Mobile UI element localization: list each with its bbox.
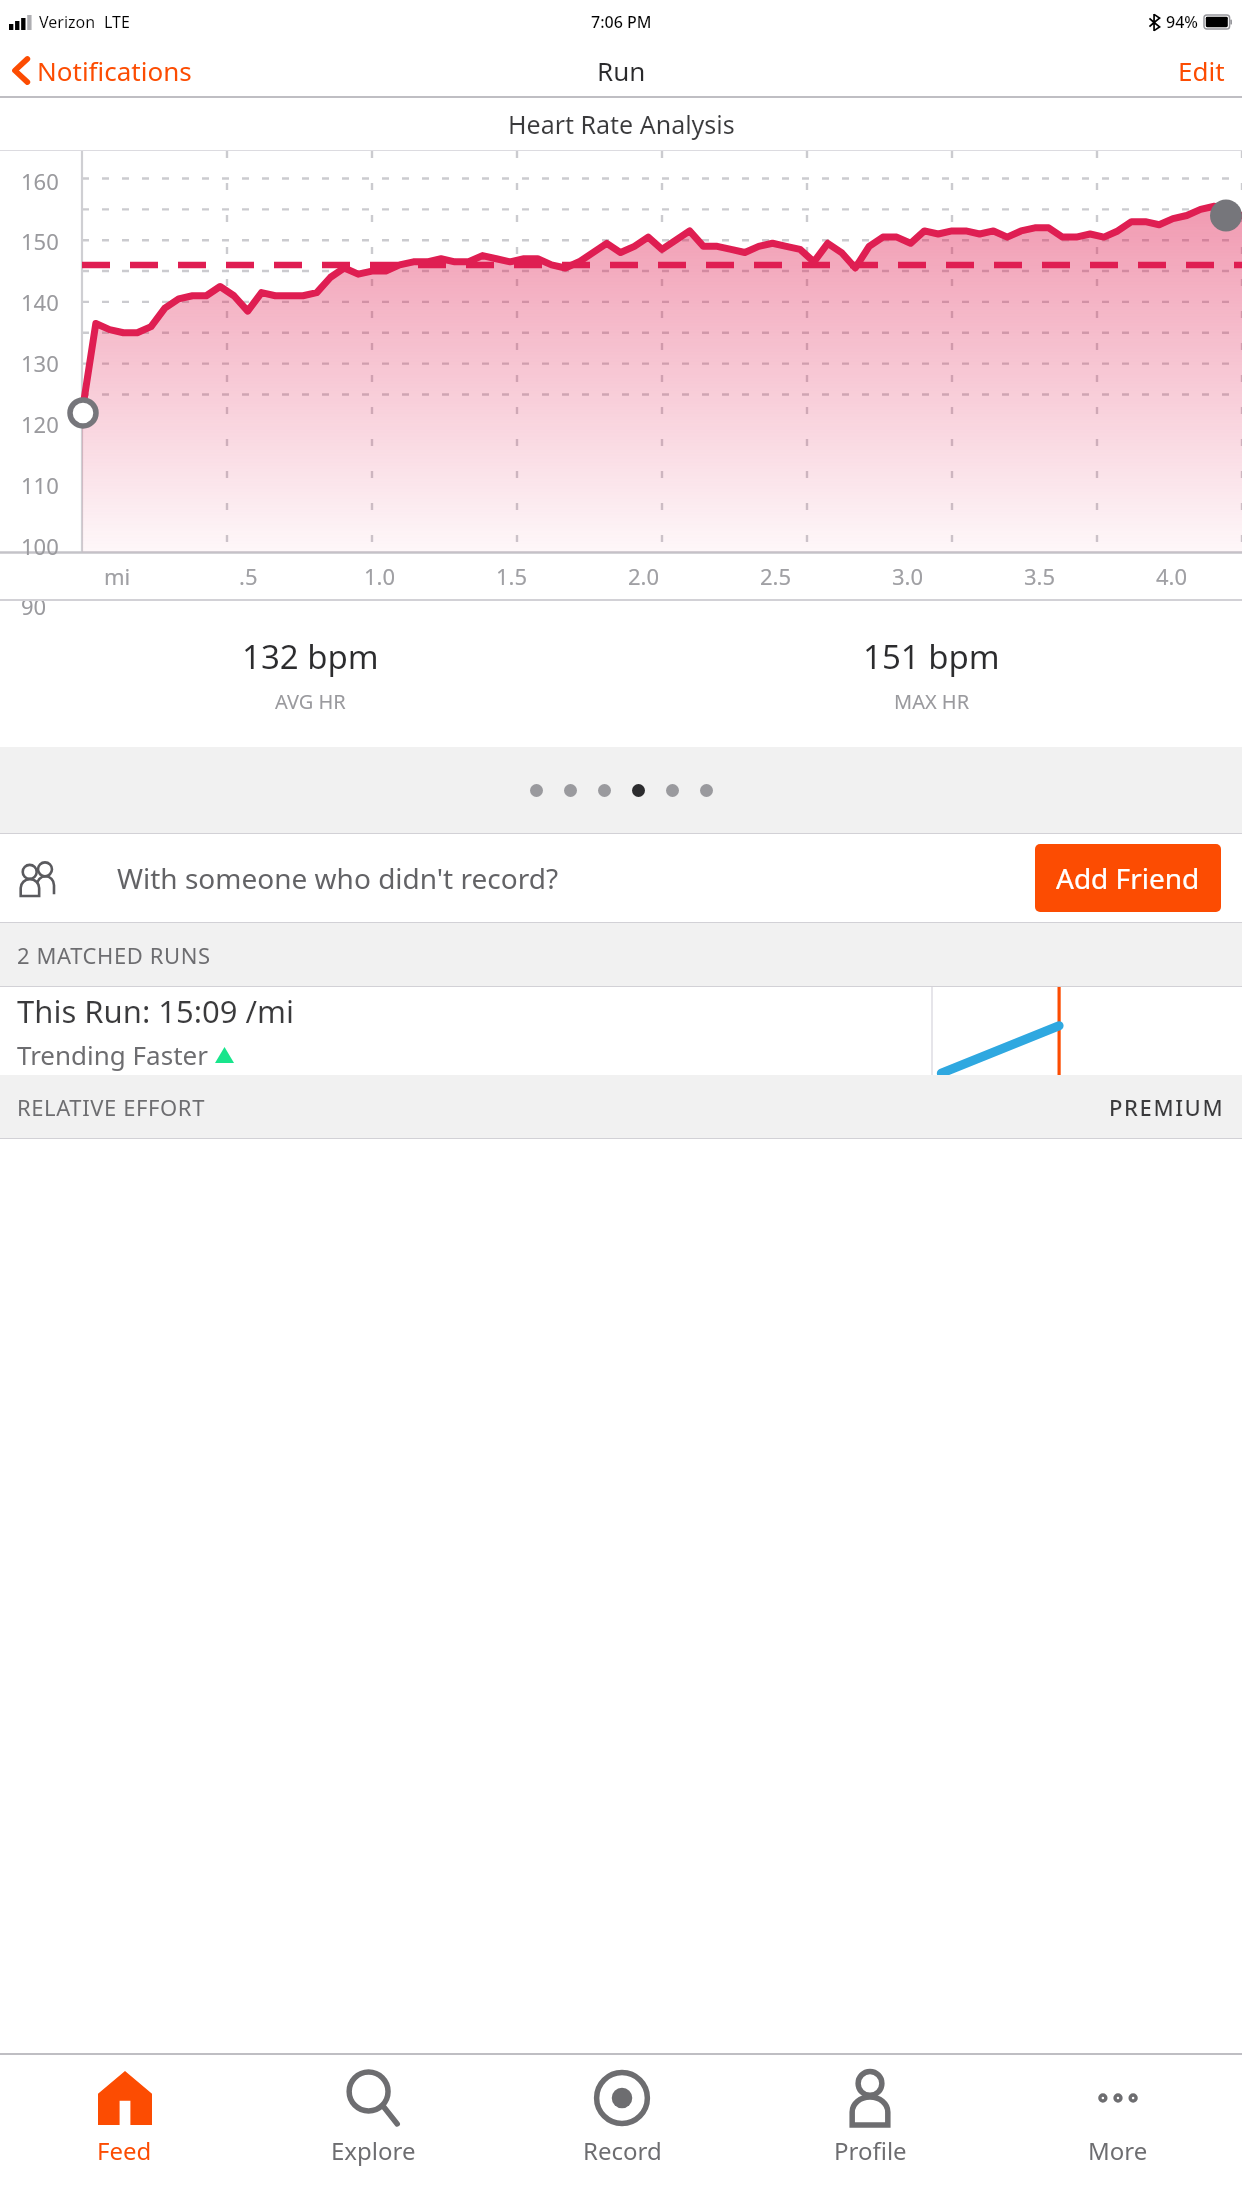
button[interactable]: This Run: 15:09 /mi (0, 987, 1242, 1075)
button[interactable]: More (994, 2055, 1242, 2208)
staticText: Heart Rate Analysis (508, 107, 735, 141)
staticText: 1.5 (496, 561, 528, 591)
staticText: mi (104, 561, 131, 591)
button[interactable]: Notifications (0, 47, 206, 94)
staticText: PREMIUM (1109, 1092, 1225, 1122)
staticText: 120 (21, 409, 59, 439)
staticText: 100 (21, 531, 59, 561)
staticText: 132 bpm (242, 634, 379, 679)
staticText: More (1088, 2134, 1148, 2167)
staticText: 7:06 PM (591, 11, 652, 33)
button[interactable]: Add Friend (1035, 844, 1221, 912)
staticText: 151 bpm (863, 634, 1000, 679)
staticText: 2.5 (760, 561, 792, 591)
staticText: Notifications (37, 53, 192, 88)
staticText: This Run: 15:09 /mi (17, 990, 295, 1032)
staticText: 130 (21, 348, 59, 378)
button[interactable]: Edit (1161, 44, 1242, 96)
button[interactable]: Explore (249, 2055, 498, 2208)
staticText: Edit (1178, 53, 1225, 87)
staticText: Profile (834, 2134, 907, 2167)
staticText: 3.0 (892, 561, 924, 591)
staticText: LTE (104, 11, 130, 33)
staticText: 150 (21, 226, 59, 256)
staticText: Feed (97, 2134, 152, 2167)
staticText: AVG HR (275, 688, 346, 715)
button[interactable]: With someone who didn't record? (0, 834, 1242, 922)
staticText: Add Friend (1056, 859, 1200, 897)
staticText: Explore (331, 2134, 416, 2167)
staticText: 90 (21, 591, 47, 621)
staticText: 94% (1166, 11, 1198, 33)
staticText: 2.0 (628, 561, 660, 591)
staticText: 4.0 (1156, 561, 1188, 591)
staticText: Run (597, 53, 646, 88)
staticText: Trending Faster (17, 1037, 208, 1072)
button[interactable]: Feed (0, 2055, 249, 2208)
staticText: .5 (239, 561, 258, 591)
staticText: RELATIVE EFFORT (17, 1092, 205, 1122)
staticText: MAX HR (894, 688, 970, 715)
staticText: Verizon (39, 11, 96, 33)
staticText: With someone who didn't record? (117, 859, 559, 897)
staticText: 1.0 (364, 561, 396, 591)
staticText: 2 MATCHED RUNS (17, 940, 211, 970)
staticText: 160 (21, 166, 59, 196)
button[interactable]: Record (498, 2055, 746, 2208)
staticText: 110 (21, 470, 59, 500)
staticText: 3.5 (1024, 561, 1056, 591)
staticText: 140 (21, 287, 59, 317)
button[interactable]: Profile (746, 2055, 994, 2208)
staticText: Record (583, 2134, 662, 2167)
